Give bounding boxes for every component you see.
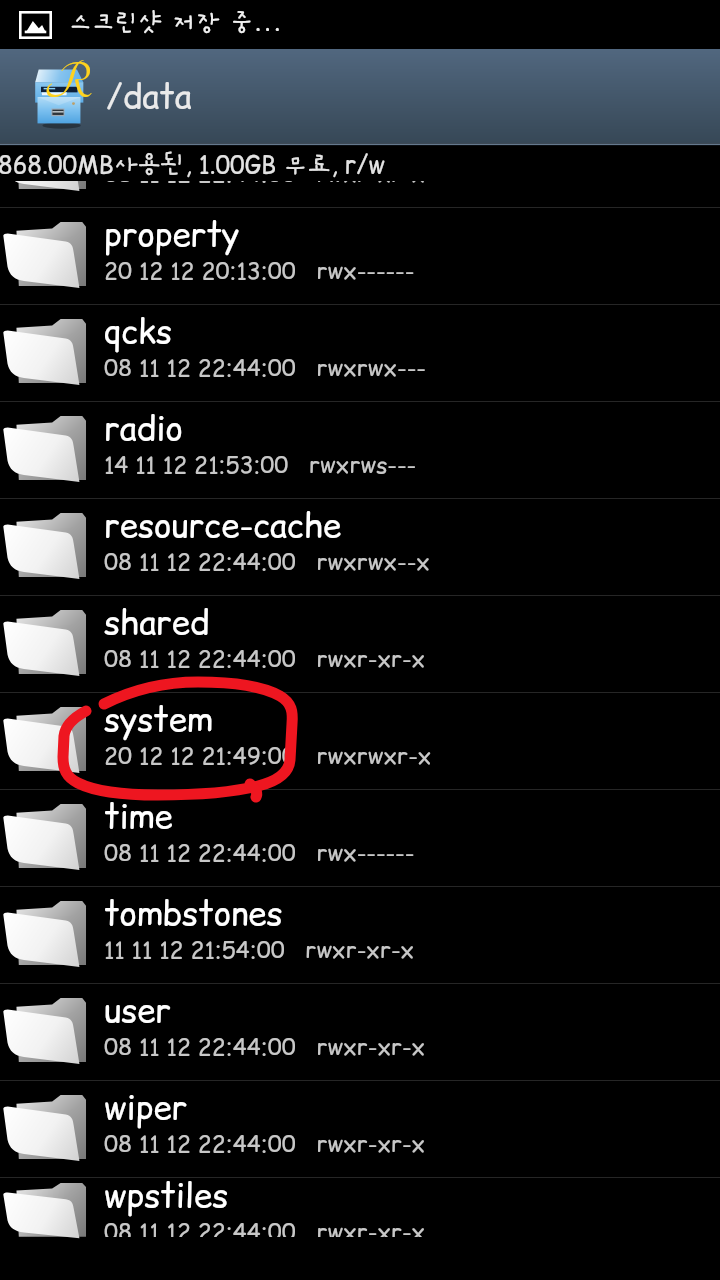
staticText: tombstones xyxy=(104,890,283,936)
staticText: 08 11 12 22:44:00 rwxrwx--- xyxy=(104,352,426,384)
staticText: 스크린샷 저장 중... xyxy=(69,10,283,38)
staticText: 08 11 12 22:44:00 rwxrwx--x xyxy=(104,546,430,578)
staticText: wpstiles xyxy=(104,1172,229,1218)
button[interactable]: user xyxy=(0,984,720,1080)
button[interactable]: property xyxy=(0,208,720,304)
button[interactable]: shared xyxy=(0,596,720,692)
staticText: 08 11 12 22:44:00 rwxr-xr-x xyxy=(104,1031,426,1063)
staticText: 868.00MB사용된, 1.00GB 무료, r/w xyxy=(0,148,385,181)
staticText: resource-cache xyxy=(104,502,342,548)
button[interactable]: wpstiles xyxy=(0,1178,720,1245)
staticText: 14 11 12 21:53:00 rwxrws--- xyxy=(104,449,417,481)
staticText: /data xyxy=(106,73,192,119)
other: Screenshot notification xyxy=(19,11,52,39)
button[interactable]: wiper xyxy=(0,1081,720,1177)
button[interactable]: radio xyxy=(0,402,720,498)
button[interactable]: R xyxy=(0,49,720,146)
staticText: 08 11 12 22:44:00 rwxr-xr-x xyxy=(104,158,426,190)
staticText: 20 12 12 20:13:00 rwx------ xyxy=(104,255,415,287)
staticText: platform.xml xyxy=(104,146,302,160)
button[interactable]: resource-cache xyxy=(0,499,720,595)
button[interactable]: tombstones xyxy=(0,887,720,983)
staticText: 08 11 12 22:44:00 rwxr-xr-x xyxy=(104,1216,426,1237)
button[interactable]: time xyxy=(0,790,720,886)
staticText: 20 12 12 21:49:00 rwxrwxr-x xyxy=(104,740,432,772)
staticText: shared xyxy=(104,599,210,645)
staticText: 08 11 12 22:44:00 rwxr-xr-x xyxy=(104,1128,426,1160)
staticText: property xyxy=(104,211,240,257)
staticText: R xyxy=(44,56,91,110)
staticText: user xyxy=(104,987,172,1033)
staticText: 08 11 12 22:44:00 rwx------ xyxy=(104,837,415,869)
staticText: radio xyxy=(104,405,183,451)
staticText: time xyxy=(104,793,173,839)
button[interactable]: platform.xml xyxy=(0,146,720,207)
button[interactable]: qcks xyxy=(0,305,720,401)
button[interactable]: system xyxy=(0,693,720,789)
staticText: 11 11 12 21:54:00 rwxr-xr-x xyxy=(104,934,415,966)
staticText: 08 11 12 22:44:00 rwxr-xr-x xyxy=(104,643,426,675)
staticText: system xyxy=(104,696,213,742)
staticText: wiper xyxy=(104,1084,188,1130)
staticText: qcks xyxy=(104,308,172,354)
